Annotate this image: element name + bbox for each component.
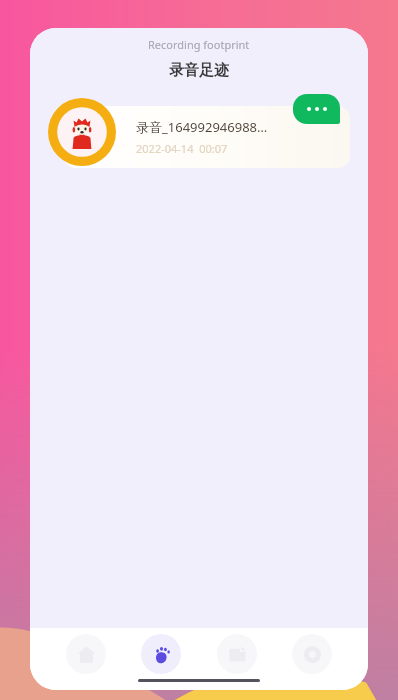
staticText: 录音足迹 xyxy=(169,61,229,80)
button[interactable]: Settings xyxy=(292,634,332,674)
button[interactable]: 录音_164992946988… xyxy=(64,106,350,168)
button[interactable]: Home xyxy=(66,634,106,674)
staticText: 2022-04-14 00:07 xyxy=(136,141,228,156)
button[interactable]: More options xyxy=(293,94,340,124)
button[interactable]: Avatar xyxy=(48,98,116,166)
button[interactable]: Media xyxy=(217,634,257,674)
staticText: Recording footprint xyxy=(148,37,250,52)
staticText: 录音_164992946988… xyxy=(136,118,268,136)
button[interactable]: Footprint xyxy=(141,634,181,674)
